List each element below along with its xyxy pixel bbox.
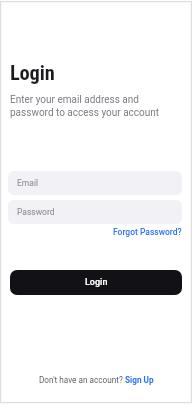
staticText: Email (17, 178, 39, 188)
button[interactable]: Email (8, 171, 182, 195)
staticText: Login (10, 61, 55, 85)
staticText: Enter your email address and password to… (10, 94, 160, 118)
staticText: Sign Up (125, 375, 154, 385)
staticText: Password (17, 207, 55, 217)
staticText: Login (85, 277, 108, 288)
button[interactable]: Forgot Password? (113, 227, 182, 237)
button[interactable]: Don't have an account? (0, 375, 192, 385)
staticText: Don't have an account? (39, 375, 125, 385)
button[interactable]: Password (8, 200, 182, 224)
button[interactable]: Login (10, 270, 182, 295)
